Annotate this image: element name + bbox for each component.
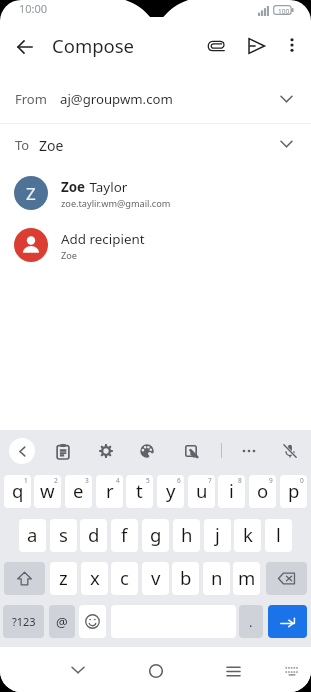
staticText: s (59, 522, 68, 547)
button[interactable]: p (280, 475, 307, 508)
button[interactable]: c (111, 562, 138, 595)
button[interactable]: Sticker (177, 437, 205, 465)
button[interactable]: i (218, 475, 245, 508)
button[interactable]: Backspace (266, 562, 307, 595)
button[interactable]: o (249, 475, 276, 508)
button[interactable]: Z (0, 176, 311, 222)
button[interactable]: x (81, 562, 108, 595)
staticText: 5 (146, 476, 150, 485)
button[interactable]: f (111, 519, 138, 552)
staticText: r (106, 478, 114, 503)
button[interactable]: Back (8, 437, 36, 465)
button[interactable]: l (265, 519, 292, 552)
staticText: w (40, 478, 55, 503)
staticText: ?123 (12, 614, 36, 629)
staticText: m (238, 565, 256, 590)
staticText: p (288, 478, 300, 503)
staticText: a (27, 522, 38, 547)
staticText: y (166, 478, 176, 503)
button[interactable]: Send (240, 30, 272, 62)
staticText: q (12, 478, 24, 503)
button[interactable]: @ (49, 605, 75, 638)
button[interactable]: z (50, 562, 77, 595)
button[interactable]: Back (7, 29, 42, 64)
button[interactable]: h (173, 519, 200, 552)
staticText: i (229, 478, 234, 503)
staticText: 7 (208, 476, 212, 485)
staticText: To (15, 136, 30, 154)
staticText: Add recipient (61, 230, 145, 248)
button[interactable]: b (172, 562, 199, 595)
button[interactable]: Theme (133, 437, 161, 465)
staticText: 10:00 (19, 1, 48, 16)
button[interactable]: y (157, 475, 184, 508)
staticText: Taylor (86, 178, 128, 196)
button[interactable]: v (142, 562, 169, 595)
staticText: v (151, 565, 161, 590)
button[interactable]: e (65, 475, 92, 508)
staticText: Zoe (39, 136, 64, 155)
staticText: z (59, 565, 68, 590)
staticText: 8 (238, 476, 242, 485)
button[interactable]: m (233, 562, 260, 595)
button[interactable]: Shift (4, 562, 45, 595)
staticText: 100 (278, 7, 290, 16)
staticText: Zoe (61, 178, 86, 196)
staticText: 0 (300, 476, 304, 485)
staticText: aj@groupwm.com (60, 90, 173, 108)
staticText: n (211, 565, 223, 590)
button[interactable]: . (239, 605, 263, 638)
button[interactable]: g (142, 519, 169, 552)
button[interactable]: t (126, 475, 153, 508)
button[interactable]: Hide keyboard (60, 652, 96, 688)
button[interactable]: ?123 (3, 605, 44, 638)
staticText: b (180, 565, 192, 590)
staticText: @ (56, 613, 68, 631)
staticText: 9 (269, 476, 273, 485)
button[interactable]: n (203, 562, 230, 595)
button[interactable]: From (0, 78, 311, 123)
staticText: Z (26, 182, 36, 205)
staticText: t (136, 478, 143, 503)
staticText: k (243, 522, 253, 547)
staticText: j (215, 522, 220, 547)
staticText: u (196, 478, 208, 503)
staticText: e (73, 478, 84, 503)
button[interactable]: Home (138, 653, 174, 689)
staticText: c (120, 565, 129, 590)
button[interactable]: More options (277, 30, 307, 60)
staticText: 2 (54, 476, 58, 485)
staticText: 3 (85, 476, 89, 485)
staticText: o (257, 478, 269, 503)
button[interactable]: More (235, 437, 263, 465)
button[interactable]: Recent apps (215, 653, 251, 689)
staticText: x (90, 565, 100, 590)
button[interactable]: Enter (268, 605, 307, 638)
button[interactable]: u (188, 475, 215, 508)
button[interactable]: d (80, 519, 107, 552)
button[interactable]: Attach file (200, 30, 232, 62)
staticText: 4 (116, 476, 120, 485)
button[interactable]: q (4, 475, 31, 508)
staticText: From (15, 90, 47, 108)
staticText: d (88, 522, 100, 547)
button[interactable]: Switch keyboard (274, 653, 310, 689)
button[interactable]: Clipboard (49, 437, 77, 465)
button[interactable]: Voice typing off (276, 437, 304, 465)
staticText: Compose (52, 33, 135, 58)
button[interactable]: Emoji (79, 605, 106, 638)
button[interactable]: Settings (92, 437, 120, 465)
button[interactable]: w (34, 475, 61, 508)
staticText: zoe.taylir.wm@gmail.com (61, 197, 171, 210)
button[interactable]: j (204, 519, 231, 552)
staticText: h (181, 522, 193, 547)
staticText: g (150, 522, 162, 547)
staticText: l (276, 522, 281, 547)
button[interactable]: a (19, 519, 46, 552)
button[interactable]: r (96, 475, 123, 508)
button[interactable]: Add recipient (0, 228, 311, 274)
button[interactable]: s (50, 519, 77, 552)
button[interactable]: k (234, 519, 261, 552)
button[interactable]: To (0, 124, 311, 168)
